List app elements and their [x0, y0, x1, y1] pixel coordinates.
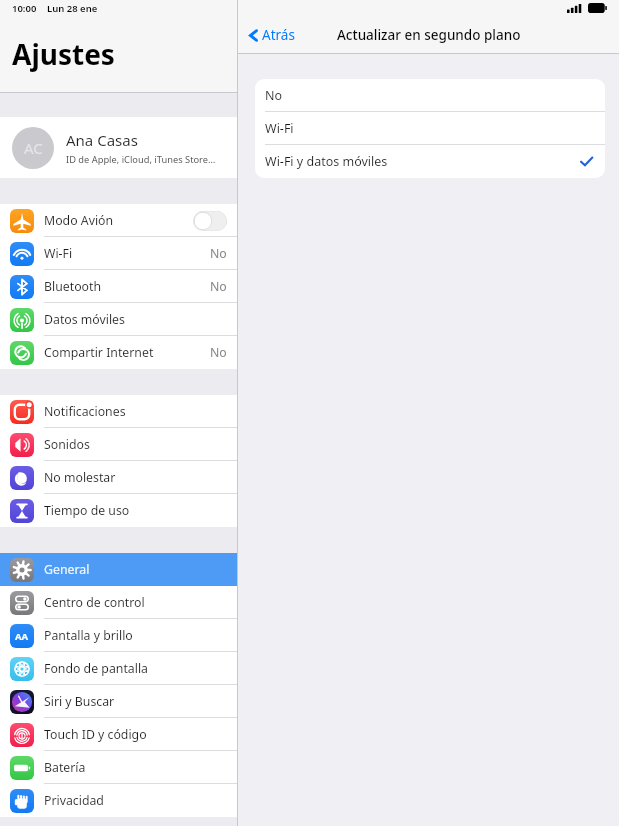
staticText: Wi-Fi [265, 120, 593, 137]
button[interactable]: Privacidad [0, 784, 237, 817]
staticText: Ana Casas [66, 130, 138, 150]
staticText: No [210, 278, 227, 295]
staticText: No [210, 245, 227, 262]
staticText: 10:00 [12, 2, 37, 15]
button[interactable]: Notificaciones [0, 395, 237, 428]
staticText: Wi-Fi y datos móviles [265, 153, 580, 170]
staticText: Actualizar en segundo plano [337, 26, 521, 44]
button[interactable]: Datos móviles [0, 303, 237, 336]
button[interactable]: Modo Avión [0, 204, 237, 237]
button[interactable]: Modo Avión [193, 211, 227, 231]
staticText: Privacidad [44, 792, 227, 809]
button[interactable]: Batería [0, 751, 237, 784]
staticText: Compartir Internet [44, 344, 210, 361]
button[interactable]: Bluetooth [0, 270, 237, 303]
staticText: General [44, 561, 227, 578]
staticText: No [210, 344, 227, 361]
button[interactable]: No molestar [0, 461, 237, 494]
staticText: Datos móviles [44, 311, 227, 328]
button[interactable]: Siri y Buscar [0, 685, 237, 718]
staticText: Fondo de pantalla [44, 660, 227, 677]
button[interactable]: Wi-Fi [255, 112, 605, 145]
button[interactable]: Sonidos [0, 428, 237, 461]
button[interactable]: Atrás [248, 26, 295, 44]
staticText: Tiempo de uso [44, 502, 227, 519]
staticText: Ajustes [12, 35, 115, 73]
button[interactable]: Tiempo de uso [0, 494, 237, 527]
staticText: No [265, 87, 593, 104]
staticText: Siri y Buscar [44, 693, 227, 710]
staticText: AC [24, 138, 43, 158]
button[interactable]: Centro de control [0, 586, 237, 619]
staticText: Centro de control [44, 594, 227, 611]
staticText: Wi-Fi [44, 245, 210, 262]
button[interactable]: Wi-Fi [0, 237, 237, 270]
button[interactable]: Wi-Fi y datos móviles [255, 145, 605, 178]
staticText: Touch ID y código [44, 726, 227, 743]
staticText: Sonidos [44, 436, 227, 453]
staticText: Pantalla y brillo [44, 627, 227, 644]
staticText: Batería [44, 759, 227, 776]
staticText: ID de Apple, iCloud, iTunes Store… [66, 153, 216, 166]
button[interactable]: No [255, 79, 605, 112]
button[interactable]: Touch ID y código [0, 718, 237, 751]
staticText: Lun 28 ene [47, 2, 98, 15]
button[interactable]: Compartir Internet [0, 336, 237, 369]
button[interactable]: Fondo de pantalla [0, 652, 237, 685]
staticText: Atrás [262, 26, 295, 44]
staticText: Modo Avión [44, 212, 193, 229]
button[interactable]: AA [0, 619, 237, 652]
button[interactable]: General [0, 553, 237, 586]
staticText: No molestar [44, 469, 227, 486]
staticText: AA [15, 630, 29, 643]
staticText: Bluetooth [44, 278, 210, 295]
button[interactable]: AC [0, 117, 237, 178]
staticText: Notificaciones [44, 403, 227, 420]
